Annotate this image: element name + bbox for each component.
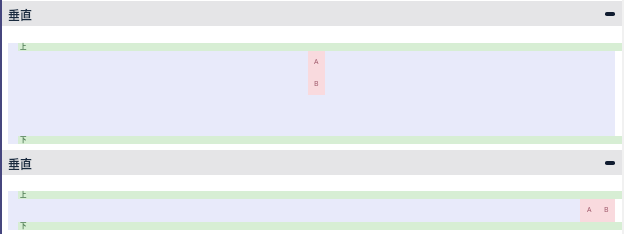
button[interactable]	[580, 199, 615, 222]
staticText: 垂直	[8, 6, 33, 23]
button[interactable]: Collapse section	[602, 6, 618, 22]
staticText: A	[314, 57, 319, 67]
staticText: 上	[20, 189, 27, 198]
button[interactable]: 垂直	[0, 150, 624, 175]
staticText: 下	[20, 134, 27, 143]
staticText: 上	[20, 41, 27, 50]
staticText: 下	[20, 220, 27, 229]
button[interactable]	[8, 191, 615, 230]
staticText: A	[587, 205, 592, 215]
button[interactable]	[308, 51, 325, 95]
button[interactable]	[8, 43, 615, 144]
staticText: B	[314, 79, 319, 89]
button[interactable]: Collapse section	[602, 155, 618, 171]
staticText: 垂直	[8, 155, 33, 172]
staticText: B	[604, 205, 609, 215]
button[interactable]: 垂直	[0, 1, 624, 26]
